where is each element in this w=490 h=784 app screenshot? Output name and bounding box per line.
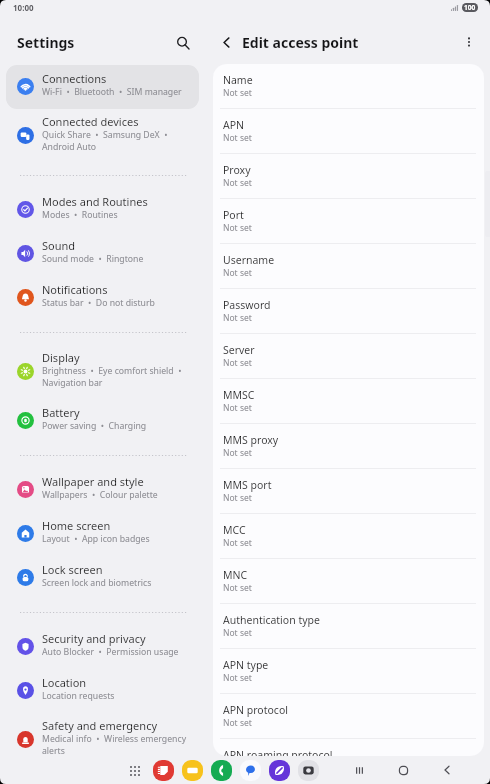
- staticText: Safety and emergency: [42, 718, 158, 733]
- staticText: Quick Share • Samsung DeX •: [42, 129, 168, 141]
- button[interactable]: Lock screen: [6, 556, 199, 600]
- button[interactable]: Port: [213, 199, 484, 244]
- staticText: 100: [464, 3, 476, 12]
- button[interactable]: Internet: [269, 760, 290, 781]
- staticText: MNC: [223, 568, 248, 582]
- button[interactable]: Home: [390, 757, 416, 783]
- staticText: Not set: [223, 672, 252, 684]
- staticText: Settings: [17, 33, 75, 52]
- button[interactable]: Connected devices: [6, 109, 199, 163]
- button[interactable]: Username: [213, 244, 484, 289]
- button[interactable]: Search: [170, 30, 196, 56]
- staticText: Not set: [223, 402, 252, 414]
- button[interactable]: Camera: [298, 760, 319, 781]
- staticText: 10:00: [13, 2, 34, 13]
- staticText: Not set: [223, 447, 252, 459]
- button[interactable]: Phone: [211, 760, 232, 781]
- staticText: Power saving • Charging: [42, 420, 147, 432]
- staticText: Wallpapers • Colour palette: [42, 489, 158, 501]
- staticText: Auto Blocker • Permission usage: [42, 646, 179, 658]
- button[interactable]: Notifications: [6, 276, 199, 320]
- staticText: Display: [42, 350, 80, 365]
- button[interactable]: My Files: [182, 760, 203, 781]
- staticText: alerts: [42, 745, 65, 757]
- staticText: Medical info • Wireless emergency: [42, 733, 187, 745]
- staticText: Not set: [223, 222, 252, 234]
- staticText: Modes • Routines: [42, 209, 118, 221]
- staticText: APN roaming protocol: [223, 748, 333, 756]
- button[interactable]: Battery: [6, 399, 199, 443]
- staticText: MMSC: [223, 388, 255, 402]
- staticText: Navigation bar: [42, 377, 103, 389]
- button[interactable]: Name: [213, 64, 484, 109]
- staticText: Not set: [223, 312, 252, 324]
- button[interactable]: APN: [213, 109, 484, 154]
- button[interactable]: MNC: [213, 559, 484, 604]
- button[interactable]: Notes: [153, 760, 174, 781]
- staticText: Not set: [223, 492, 252, 504]
- staticText: Edit access point: [242, 33, 359, 52]
- button[interactable]: Modes and Routines: [6, 188, 199, 232]
- staticText: APN protocol: [223, 703, 288, 717]
- staticText: Not set: [223, 357, 252, 369]
- staticText: Location: [42, 675, 87, 690]
- button[interactable]: Security and privacy: [6, 625, 199, 669]
- staticText: Sound: [42, 238, 76, 253]
- staticText: Password: [223, 298, 271, 312]
- button[interactable]: Password: [213, 289, 484, 334]
- staticText: APN: [223, 118, 245, 132]
- staticText: Location requests: [42, 690, 115, 702]
- button[interactable]: More options: [457, 30, 481, 54]
- staticText: Authentication type: [223, 613, 320, 627]
- button[interactable]: MMS proxy: [213, 424, 484, 469]
- button[interactable]: Home screen: [6, 512, 199, 556]
- button[interactable]: Apps: [125, 761, 145, 781]
- button[interactable]: Messages: [240, 760, 261, 781]
- button[interactable]: Sound: [6, 232, 199, 276]
- staticText: MMS proxy: [223, 433, 279, 447]
- button[interactable]: Location: [6, 669, 199, 713]
- staticText: Server: [223, 343, 255, 357]
- button[interactable]: MCC: [213, 514, 484, 559]
- button[interactable]: Connections: [6, 65, 199, 109]
- staticText: MMS port: [223, 478, 272, 492]
- staticText: Not set: [223, 177, 252, 189]
- button[interactable]: APN type: [213, 649, 484, 694]
- button[interactable]: Display: [6, 345, 199, 399]
- button[interactable]: Proxy: [213, 154, 484, 199]
- staticText: Not set: [223, 87, 252, 99]
- staticText: Connected devices: [42, 114, 139, 129]
- staticText: Lock screen: [42, 562, 103, 577]
- staticText: Not set: [223, 132, 252, 144]
- staticText: Not set: [223, 582, 252, 594]
- staticText: Status bar • Do not disturb: [42, 297, 155, 309]
- staticText: Brightness • Eye comfort shield •: [42, 365, 182, 377]
- button[interactable]: Server: [213, 334, 484, 379]
- button[interactable]: APN protocol: [213, 694, 484, 739]
- button[interactable]: APN roaming protocol: [213, 739, 484, 756]
- staticText: Proxy: [223, 163, 251, 177]
- staticText: Android Auto: [42, 141, 97, 153]
- button[interactable]: Authentication type: [213, 604, 484, 649]
- staticText: Battery: [42, 405, 80, 420]
- staticText: MCC: [223, 523, 246, 537]
- button[interactable]: Back: [215, 31, 237, 53]
- button[interactable]: Back: [434, 757, 460, 783]
- staticText: Layout • App icon badges: [42, 533, 150, 545]
- staticText: Not set: [223, 627, 252, 639]
- staticText: Not set: [223, 717, 252, 729]
- staticText: Not set: [223, 537, 252, 549]
- staticText: Not set: [223, 267, 252, 279]
- button[interactable]: MMSC: [213, 379, 484, 424]
- staticText: Security and privacy: [42, 631, 146, 646]
- button[interactable]: Recents: [346, 757, 372, 783]
- button[interactable]: MMS port: [213, 469, 484, 514]
- button[interactable]: Safety and emergency: [6, 713, 199, 767]
- staticText: APN type: [223, 658, 269, 672]
- staticText: Connections: [42, 71, 107, 86]
- staticText: Sound mode • Ringtone: [42, 253, 144, 265]
- button[interactable]: Wallpaper and style: [6, 468, 199, 512]
- staticText: Home screen: [42, 518, 111, 533]
- staticText: Port: [223, 208, 244, 222]
- staticText: Screen lock and biometrics: [42, 577, 152, 589]
